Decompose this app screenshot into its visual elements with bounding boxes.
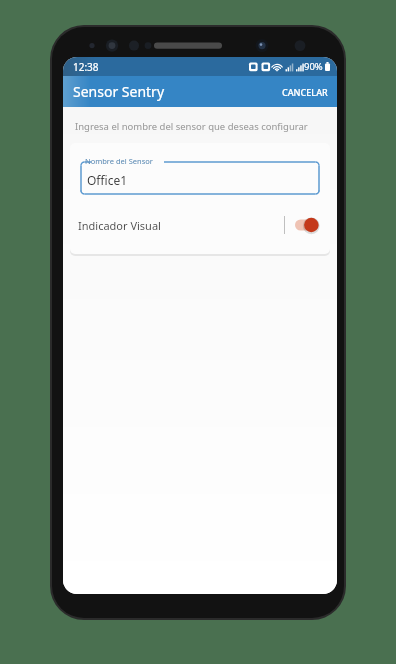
staticText: Indicador Visual: [78, 218, 161, 233]
staticText: 12:38: [73, 60, 99, 74]
button[interactable]: Indicador Visual toggle: [294, 216, 320, 234]
staticText: Nombre del Sensor: [85, 156, 153, 166]
button[interactable]: Indicador Visual: [70, 209, 330, 241]
staticText: Ingresa el nombre del sensor que deseas …: [75, 120, 308, 133]
button[interactable]: CANCELAR: [273, 80, 337, 104]
button[interactable]: Nombre del Sensor: [80, 157, 320, 195]
staticText: Sensor Sentry: [73, 82, 165, 101]
staticText: CANCELAR: [282, 86, 328, 98]
staticText: 90%: [304, 60, 323, 73]
staticText: Office1: [87, 172, 128, 188]
